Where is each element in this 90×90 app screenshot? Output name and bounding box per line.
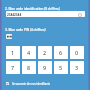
- staticText: Se souvenir de mes identifiants: [12, 82, 51, 86]
- staticText: 6: [59, 49, 63, 56]
- staticText: 3. Mon code PIN (4 chiffres): [5, 28, 46, 32]
- staticText: 1: [11, 49, 15, 56]
- staticText: 7: [11, 64, 15, 71]
- staticText: 9: [43, 64, 47, 71]
- staticText: 2: [43, 49, 47, 56]
- button[interactable]: 5: [54, 61, 68, 74]
- button[interactable]: 4: [22, 46, 36, 59]
- button[interactable]: [6, 11, 85, 17]
- staticText: 8: [27, 64, 31, 71]
- button[interactable]: 1: [6, 46, 20, 59]
- button[interactable]: 6: [54, 46, 68, 59]
- staticText: 5: [59, 64, 63, 71]
- button[interactable]: 8: [22, 61, 36, 74]
- staticText: 23442344: [7, 13, 22, 17]
- button[interactable]: Se souvenir de mes identifiants: [6, 81, 48, 86]
- button[interactable]: 3: [70, 61, 84, 74]
- staticText: 4: [27, 49, 31, 56]
- button[interactable]: Effacer: [78, 13, 82, 17]
- staticText: 2. Mon code identification (8 chiffres): [5, 7, 60, 11]
- button[interactable]: 0: [70, 46, 84, 59]
- button[interactable]: 7: [6, 61, 20, 74]
- staticText: 0: [75, 49, 79, 56]
- button[interactable]: 9: [38, 61, 52, 74]
- button[interactable]: 2: [38, 46, 52, 59]
- button[interactable]: [6, 34, 12, 39]
- staticText: 3: [75, 64, 79, 71]
